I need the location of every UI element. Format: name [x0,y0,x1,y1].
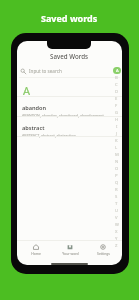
staticText: O [115,166,119,172]
button[interactable]: D [111,88,122,95]
button[interactable]: G [111,109,122,116]
staticText: abstract [22,124,45,132]
button[interactable]: W [111,221,122,228]
button[interactable]: X [111,228,122,235]
staticText: P [115,173,118,179]
button[interactable]: A [111,67,122,74]
button[interactable]: E [111,95,122,102]
staticText: X [115,229,118,235]
staticText: Y [115,236,118,242]
staticText: M [115,152,119,158]
button[interactable]: T [111,200,122,207]
staticText: R [115,187,118,193]
staticText: G [115,110,119,116]
button[interactable]: U [111,207,122,214]
staticText: V [115,215,118,221]
staticText: Saved words [41,12,98,24]
staticText: Settings [97,251,110,256]
staticText: N [115,159,119,165]
button[interactable]: abstract [17,117,122,137]
button[interactable]: Settings [88,244,118,256]
staticText: ABSTRACT, abstract, abstraction [22,133,76,138]
button[interactable]: P [111,172,122,179]
button[interactable]: H [111,116,122,123]
button[interactable]: I [111,123,122,130]
staticText: J [116,131,118,137]
staticText: C [115,82,118,88]
button[interactable]: F [111,102,122,109]
button[interactable]: Z [111,242,122,249]
button[interactable]: Y [111,235,122,242]
button[interactable]: Home [21,244,51,256]
staticText: T [115,201,118,207]
staticText: U [115,208,119,214]
staticText: I [116,124,118,130]
staticText: Q [115,180,119,186]
staticText: L [115,145,118,151]
staticText: H [115,117,119,123]
staticText: A [116,68,119,74]
button[interactable]: O [111,165,122,172]
staticText: Input to search [29,68,62,74]
button[interactable]: C [111,81,122,88]
button[interactable]: S [111,193,122,200]
staticText: F [115,103,118,109]
button[interactable]: M [111,151,122,158]
staticText: Your word [62,251,79,256]
staticText: abandon [22,104,47,112]
staticText: E [115,96,118,102]
staticText: K [115,138,118,144]
staticText: D [115,89,119,95]
button[interactable]: R [111,186,122,193]
staticText: A [23,83,31,98]
button[interactable]: N [111,158,122,165]
staticText: W [115,222,119,228]
staticText: Home [31,251,41,256]
button[interactable]: Your word [55,244,85,256]
staticText: ABANDON, abandon, abandoned, abandonment [22,113,104,118]
button[interactable]: V [111,214,122,221]
button[interactable]: K [111,137,122,144]
button[interactable]: Input to search [20,66,110,76]
staticText: S [115,194,118,200]
staticText: Saved Words [50,52,89,60]
button[interactable]: Q [111,179,122,186]
button[interactable]: B [111,74,122,81]
staticText: B [115,75,118,81]
button[interactable]: abandon [17,97,122,117]
staticText: Z [115,243,118,249]
button[interactable]: J [111,130,122,137]
button[interactable]: L [111,144,122,151]
